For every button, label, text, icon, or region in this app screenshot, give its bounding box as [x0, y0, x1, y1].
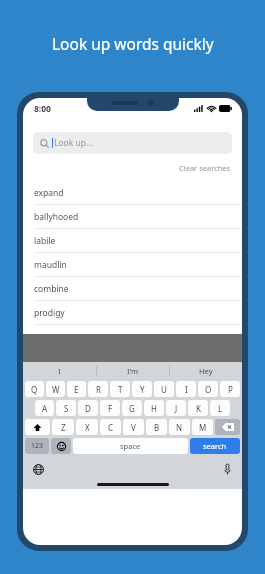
- staticText: space: [120, 441, 141, 451]
- button[interactable]: T: [110, 381, 130, 397]
- button[interactable]: search: [190, 438, 240, 454]
- button[interactable]: C: [100, 419, 121, 435]
- button[interactable]: E: [67, 381, 86, 397]
- staticText: R: [96, 384, 101, 395]
- staticText: labile: [34, 235, 56, 247]
- staticText: maudlin: [34, 259, 67, 271]
- button[interactable]: W: [46, 381, 65, 397]
- button[interactable]: Look up...: [33, 132, 232, 154]
- staticText: B: [154, 422, 160, 433]
- button[interactable]: combine: [23, 277, 242, 300]
- button[interactable]: expand: [23, 181, 242, 204]
- button[interactable]: Backspace: [215, 419, 240, 435]
- button[interactable]: M: [192, 419, 213, 435]
- staticText: prodigy: [34, 307, 65, 319]
- staticText: Look up...: [54, 137, 93, 149]
- staticText: L: [218, 403, 223, 414]
- button[interactable]: Y: [132, 381, 152, 397]
- button[interactable]: space: [73, 438, 188, 454]
- staticText: D: [85, 403, 91, 414]
- button[interactable]: B: [146, 419, 167, 435]
- button[interactable]: P: [220, 381, 240, 397]
- button[interactable]: S: [56, 400, 76, 416]
- button[interactable]: prodigy: [23, 301, 242, 324]
- button[interactable]: R: [88, 381, 108, 397]
- button[interactable]: Change language: [31, 462, 45, 476]
- staticText: N: [176, 422, 183, 433]
- staticText: 8:00: [34, 103, 51, 115]
- staticText: V: [131, 422, 136, 433]
- button[interactable]: D: [78, 400, 98, 416]
- button[interactable]: Clear searches: [179, 163, 242, 173]
- staticText: I: [185, 384, 188, 395]
- button[interactable]: I: [176, 381, 196, 397]
- button[interactable]: O: [198, 381, 218, 397]
- button[interactable]: F: [100, 400, 120, 416]
- button[interactable]: Z: [52, 419, 74, 435]
- button[interactable]: ballyhooed: [23, 205, 242, 228]
- button[interactable]: I: [23, 362, 96, 379]
- staticText: J: [175, 403, 178, 414]
- staticText: expand: [34, 187, 64, 199]
- button[interactable]: labile: [23, 229, 242, 252]
- staticText: G: [129, 403, 135, 414]
- staticText: A: [42, 403, 48, 414]
- staticText: 123: [31, 441, 44, 451]
- button[interactable]: G: [122, 400, 142, 416]
- staticText: X: [85, 422, 90, 433]
- button[interactable]: L: [210, 400, 230, 416]
- staticText: Hey: [199, 366, 213, 376]
- staticText: H: [151, 403, 157, 414]
- staticText: Y: [140, 384, 145, 395]
- staticText: Look up words quickly: [52, 33, 214, 54]
- staticText: C: [108, 422, 114, 433]
- staticText: T: [118, 384, 123, 395]
- button[interactable]: Voice input: [220, 462, 234, 476]
- button[interactable]: I'm: [97, 362, 169, 379]
- staticText: W: [52, 384, 60, 395]
- button[interactable]: Hey: [170, 362, 242, 379]
- button[interactable]: maudlin: [23, 253, 242, 276]
- staticText: K: [196, 403, 201, 414]
- staticText: ballyhooed: [34, 211, 79, 223]
- button[interactable]: 123: [25, 438, 49, 454]
- button[interactable]: Emoji: [51, 438, 71, 454]
- button[interactable]: X: [76, 419, 98, 435]
- button[interactable]: V: [123, 419, 144, 435]
- button[interactable]: N: [169, 419, 190, 435]
- staticText: combine: [34, 283, 69, 295]
- staticText: M: [199, 422, 207, 433]
- staticText: Q: [31, 384, 38, 395]
- button[interactable]: Shift: [25, 419, 50, 435]
- staticText: P: [228, 384, 233, 395]
- staticText: E: [74, 384, 79, 395]
- staticText: O: [205, 384, 212, 395]
- staticText: I'm: [127, 366, 139, 376]
- staticText: F: [108, 403, 113, 414]
- button[interactable]: U: [154, 381, 174, 397]
- button[interactable]: J: [166, 400, 186, 416]
- staticText: search: [203, 441, 227, 451]
- staticText: I: [58, 366, 61, 376]
- button[interactable]: A: [35, 400, 54, 416]
- button[interactable]: K: [188, 400, 208, 416]
- staticText: Z: [61, 422, 66, 433]
- staticText: U: [161, 384, 167, 395]
- button[interactable]: Q: [25, 381, 44, 397]
- staticText: S: [64, 403, 69, 414]
- button[interactable]: H: [144, 400, 164, 416]
